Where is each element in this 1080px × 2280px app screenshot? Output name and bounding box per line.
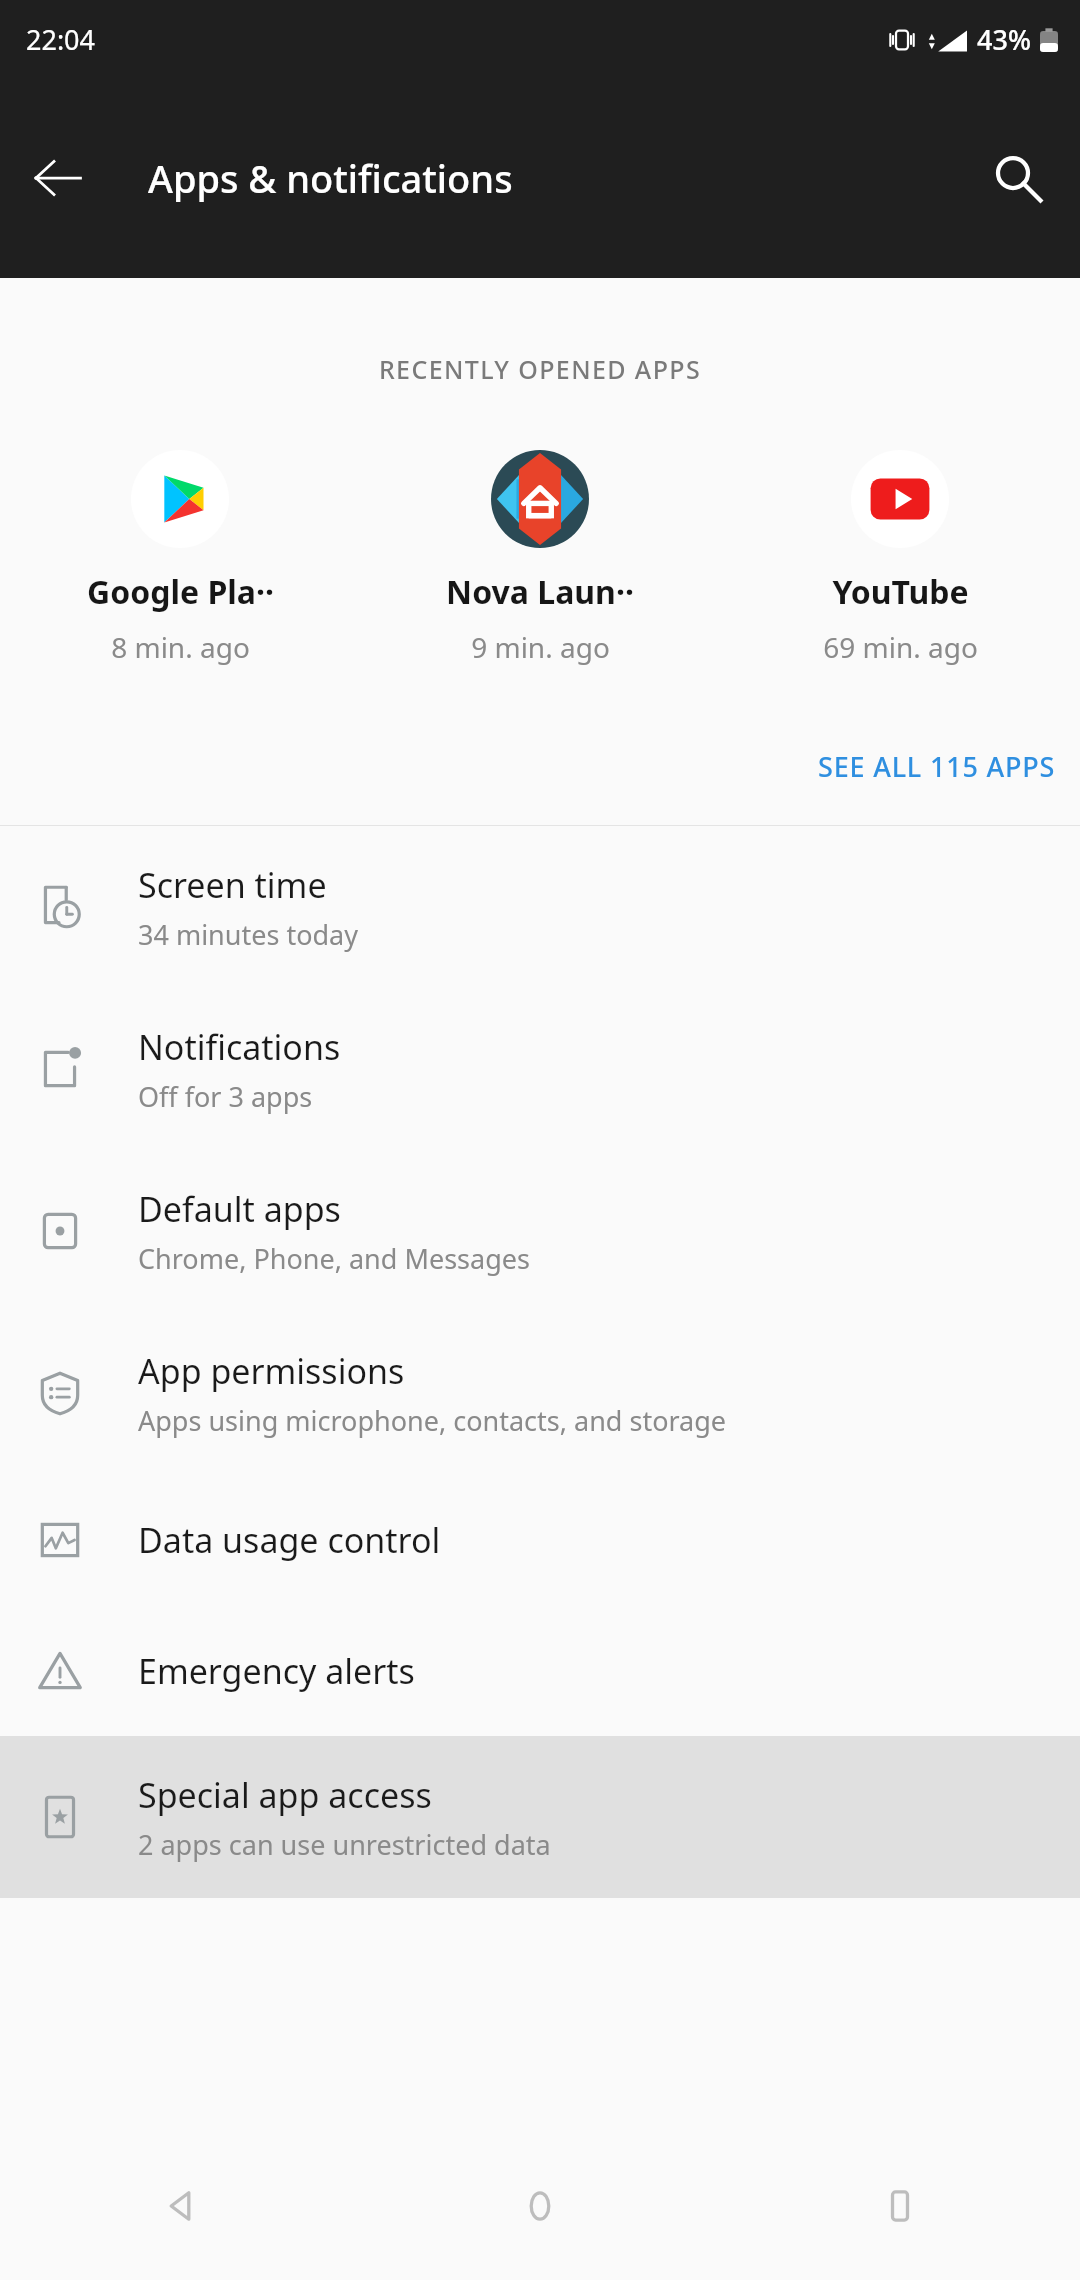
- button[interactable]: Notifications: [0, 988, 1080, 1150]
- staticText: Google Pla··: [87, 570, 274, 614]
- staticText: YouTube: [832, 570, 969, 614]
- staticText: 2 apps can use unrestricted data: [138, 1826, 551, 1863]
- staticText: Chrome, Phone, and Messages: [138, 1240, 530, 1277]
- button[interactable]: YouTube: [720, 446, 1080, 670]
- button[interactable]: Screen time: [0, 826, 1080, 988]
- staticText: 9 min. ago: [471, 628, 610, 666]
- staticText: Data usage control: [138, 1517, 441, 1563]
- button[interactable]: Emergency alerts: [0, 1605, 1080, 1736]
- button[interactable]: Back: [0, 2132, 360, 2280]
- staticText: Screen time: [138, 862, 327, 908]
- button[interactable]: App permissions: [0, 1312, 1080, 1474]
- staticText: 8 min. ago: [111, 628, 250, 666]
- staticText: SEE ALL 115 APPS: [818, 748, 1056, 785]
- button[interactable]: Google Pla··: [0, 446, 360, 670]
- staticText: Apps & notifications: [148, 152, 513, 204]
- staticText: 22:04: [26, 21, 96, 58]
- staticText: 69 min. ago: [823, 628, 978, 666]
- staticText: Apps using microphone, contacts, and sto…: [138, 1402, 727, 1439]
- staticText: Off for 3 apps: [138, 1078, 313, 1115]
- staticText: App permissions: [138, 1348, 405, 1394]
- staticText: Nova Laun··: [446, 570, 634, 614]
- button[interactable]: Search: [970, 130, 1066, 226]
- button[interactable]: Special app access: [0, 1736, 1080, 1898]
- staticText: Emergency alerts: [138, 1648, 415, 1694]
- staticText: 34 minutes today: [138, 916, 359, 953]
- staticText: Default apps: [138, 1186, 341, 1232]
- button[interactable]: Default apps: [0, 1150, 1080, 1312]
- button[interactable]: SEE ALL 115 APPS: [794, 736, 1080, 797]
- button[interactable]: Home: [360, 2132, 720, 2280]
- staticText: Special app access: [138, 1772, 432, 1818]
- button[interactable]: Back: [10, 130, 106, 226]
- staticText: 43%: [977, 21, 1031, 58]
- staticText: Notifications: [138, 1024, 341, 1070]
- button[interactable]: Nova Laun··: [360, 446, 720, 670]
- button[interactable]: Data usage control: [0, 1474, 1080, 1605]
- staticText: RECENTLY OPENED APPS: [0, 352, 1080, 386]
- button[interactable]: Recent apps: [720, 2132, 1080, 2280]
